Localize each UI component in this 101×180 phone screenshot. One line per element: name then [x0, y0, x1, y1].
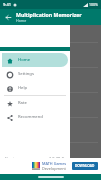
- button[interactable]: Back: [3, 12, 14, 23]
- button[interactable]: DOWNLOAD: [72, 162, 98, 170]
- staticText: Rate: [18, 100, 27, 106]
- button[interactable]: MATH Games: [3, 158, 98, 174]
- staticText: Development: [42, 166, 66, 171]
- button[interactable]: Help: [2, 81, 68, 95]
- staticText: 9:41: [3, 2, 11, 7]
- staticText: DOWNLOAD: [75, 164, 95, 168]
- staticText: MATH Games: [42, 161, 67, 166]
- button[interactable]: Recommend: [2, 110, 68, 124]
- staticText: 100%: [89, 2, 98, 7]
- staticText: Help: [18, 85, 28, 91]
- staticText: 1.0.29-G: [49, 156, 65, 161]
- staticText: Home: [18, 57, 31, 63]
- staticText: Recommend: [18, 114, 43, 120]
- staticText: Version: [5, 156, 20, 161]
- staticText: Settings: [18, 71, 34, 77]
- button[interactable]: Rate: [2, 96, 68, 110]
- button[interactable]: Settings: [2, 67, 68, 81]
- staticText: Home: [16, 18, 27, 23]
- staticText: Multiplication Memorizer: [16, 11, 82, 18]
- button[interactable]: Home: [2, 53, 68, 67]
